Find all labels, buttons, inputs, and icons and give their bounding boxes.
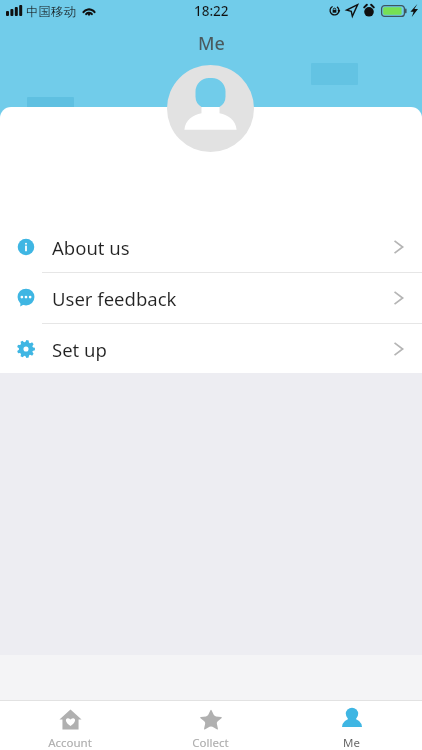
staticText: Collect [192,735,229,750]
staticText: User feedback [52,286,177,311]
button[interactable]: Account [0,701,140,750]
button[interactable]: Profile photo [167,65,254,152]
staticText: Me [343,735,360,750]
staticText: About us [52,235,130,260]
staticText: Me [198,31,225,55]
staticText: 中国移动 [26,4,76,20]
button[interactable]: Me [281,701,422,750]
button[interactable]: About us [0,222,422,272]
button[interactable]: User feedback [0,273,422,323]
staticText: Set up [52,337,107,362]
staticText: 18:22 [194,2,229,20]
button[interactable]: Collect [140,701,281,750]
button[interactable]: Set up [0,324,422,373]
staticText: Account [48,735,92,750]
